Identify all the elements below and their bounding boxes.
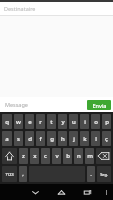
button[interactable]: ç (102, 131, 111, 146)
button[interactable]: Back (27, 184, 43, 200)
staticText: j (73, 135, 75, 143)
staticText: u (72, 118, 76, 126)
button[interactable]: c (41, 148, 50, 164)
staticText: o (94, 118, 98, 126)
button[interactable]: Home (53, 184, 69, 200)
staticText: y (61, 118, 65, 126)
staticText: h (61, 135, 65, 143)
button[interactable]: v (52, 148, 61, 164)
button[interactable]: ?123 (2, 166, 17, 182)
button[interactable]: w (14, 114, 23, 129)
button[interactable]: . (87, 166, 95, 182)
staticText: . (90, 170, 92, 178)
button[interactable]: Envia (87, 100, 111, 110)
staticText: Destinataire (4, 5, 36, 12)
staticText: d (28, 135, 32, 143)
staticText: v (55, 152, 59, 160)
staticText: x (33, 152, 37, 160)
staticText: k (83, 135, 87, 143)
button[interactable]: b (63, 148, 72, 164)
staticText: p (105, 118, 109, 126)
staticText: , (22, 170, 24, 178)
staticText: f (39, 135, 42, 143)
button[interactable]: u (69, 114, 78, 129)
button[interactable]: e (25, 114, 34, 129)
staticText: i (84, 118, 86, 126)
button[interactable]: h (58, 131, 67, 146)
button[interactable]: Backspace (96, 148, 111, 164)
staticText: r (39, 118, 42, 126)
button[interactable]: m (85, 148, 94, 164)
button[interactable]: z (19, 148, 28, 164)
staticText: w (16, 118, 21, 126)
staticText: Envia (92, 102, 107, 109)
staticText: ?123 (5, 172, 14, 177)
button[interactable]: s (14, 131, 23, 146)
staticText: Seg. (100, 172, 108, 177)
button[interactable]: Seg. (97, 166, 111, 182)
button[interactable]: r (36, 114, 45, 129)
staticText: t (50, 118, 53, 126)
button[interactable]: i (80, 114, 89, 129)
staticText: a (5, 135, 9, 143)
staticText: s (17, 135, 20, 143)
staticText: q (5, 118, 9, 126)
button[interactable]: n (74, 148, 83, 164)
button[interactable]: x (30, 148, 39, 164)
staticText: g (50, 135, 54, 143)
button[interactable]: j (69, 131, 78, 146)
button[interactable]: q (2, 114, 12, 129)
staticText: b (66, 152, 70, 160)
button[interactable]: l (91, 131, 100, 146)
button[interactable]: g (47, 131, 56, 146)
staticText: ç (105, 135, 108, 143)
button[interactable]: p (102, 114, 111, 129)
button[interactable]: , (19, 166, 27, 182)
button[interactable]: y (58, 114, 67, 129)
button[interactable]: Message (0, 97, 87, 112)
staticText: n (77, 152, 81, 160)
button[interactable]: a (2, 131, 12, 146)
staticText: z (22, 152, 25, 160)
button[interactable]: t (47, 114, 56, 129)
button[interactable]: d (25, 131, 34, 146)
button[interactable]: Destinataire (0, 2, 113, 15)
button[interactable]: o (91, 114, 100, 129)
staticText: c (44, 152, 47, 160)
button[interactable]: f (36, 131, 45, 146)
button[interactable]: Shift (2, 148, 17, 164)
button[interactable]: k (80, 131, 89, 146)
staticText: l (95, 135, 97, 143)
staticText: Message (5, 101, 28, 108)
button[interactable]: Recent apps (79, 184, 95, 200)
staticText: e (28, 118, 32, 126)
staticText: m (87, 152, 93, 160)
